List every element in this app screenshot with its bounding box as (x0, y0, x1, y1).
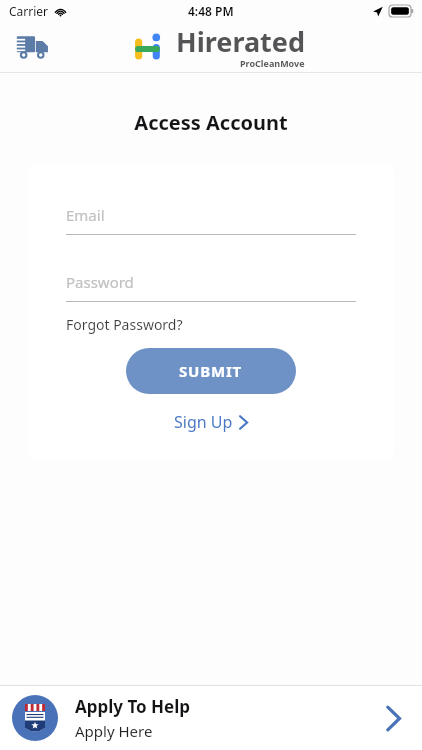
button[interactable]: Email (66, 205, 356, 235)
staticText: Forgot Password? (66, 315, 183, 334)
button[interactable]: Forgot Password? (66, 315, 183, 334)
button[interactable]: Moving services (10, 25, 54, 69)
other: Open (380, 698, 406, 738)
staticText: ProCleanMove (240, 57, 305, 69)
staticText: Hirerated (176, 23, 305, 60)
staticText: 4:48 PM (188, 3, 234, 19)
staticText: Apply Here (75, 721, 153, 741)
staticText: Access Account (0, 109, 422, 136)
button[interactable]: Password (66, 272, 356, 302)
staticText: Apply To Help (75, 695, 191, 718)
button[interactable]: SUBMIT (126, 348, 296, 394)
staticText: Email (66, 205, 105, 225)
button[interactable]: Sign Up (174, 411, 248, 433)
button[interactable]: Apply To Help (0, 686, 422, 750)
staticText: SUBMIT (179, 361, 243, 381)
staticText: Sign Up (174, 411, 233, 433)
staticText: Password (66, 272, 134, 292)
staticText: Carrier (9, 3, 49, 19)
